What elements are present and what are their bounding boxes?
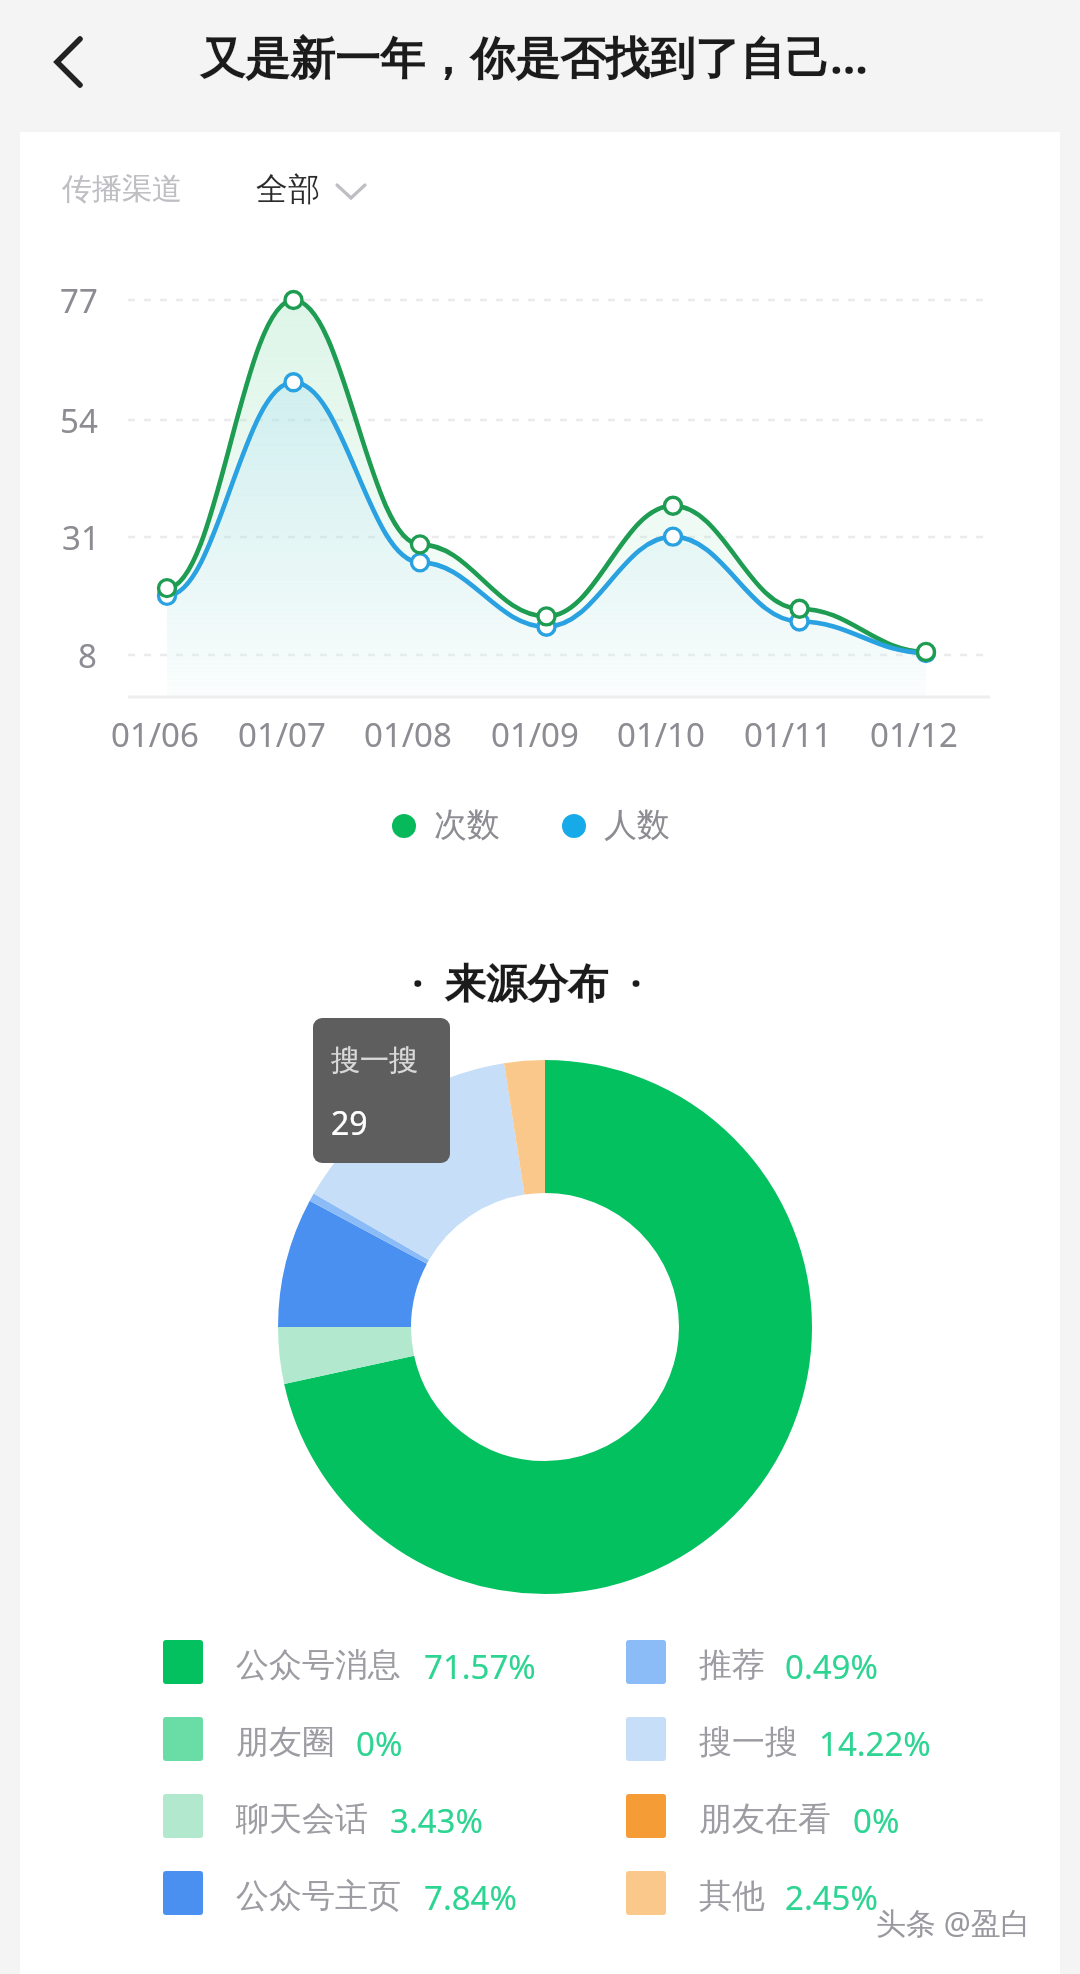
button[interactable]: 聊天会话 <box>163 1793 583 1841</box>
staticText: 77 <box>60 278 98 323</box>
button[interactable]: 朋友在看 <box>626 1793 1046 1841</box>
staticText: 54 <box>60 398 98 443</box>
staticText: 其他 <box>699 1875 765 1917</box>
staticText: 8 <box>78 633 97 678</box>
staticText: 71.57% <box>424 1644 536 1689</box>
button[interactable]: Back <box>24 18 112 106</box>
button[interactable]: 搜一搜 <box>626 1716 1046 1764</box>
staticText: 朋友在看 <box>699 1798 831 1840</box>
staticText: 01/09 <box>491 712 579 757</box>
staticText: 搜一搜 <box>331 1042 418 1079</box>
staticText: 2.45% <box>785 1875 878 1920</box>
button[interactable]: 其他 <box>626 1870 1046 1918</box>
button[interactable]: 次数 <box>392 798 522 854</box>
staticText: 01/11 <box>744 712 832 757</box>
button[interactable]: 朋友圈 <box>163 1716 583 1764</box>
staticText: 01/06 <box>111 712 199 757</box>
staticText: 公众号消息 <box>236 1644 401 1686</box>
staticText: 01/08 <box>364 712 452 757</box>
staticText: 头条 @盈白 <box>876 1902 1031 1943</box>
staticText: 7.84% <box>424 1875 517 1920</box>
staticText: 公众号主页 <box>236 1875 401 1917</box>
staticText: 01/07 <box>238 712 326 757</box>
staticText: 传播渠道 <box>62 170 182 208</box>
staticText: 31 <box>62 515 100 560</box>
button[interactable]: 公众号消息 <box>163 1639 583 1687</box>
staticText: 次数 <box>434 804 500 846</box>
staticText: 全部 <box>256 169 320 209</box>
staticText: 0% <box>853 1798 900 1843</box>
staticText: 29 <box>331 1101 368 1145</box>
button[interactable]: 人数 <box>562 798 692 854</box>
staticText: 0.49% <box>785 1644 878 1689</box>
staticText: 0% <box>356 1721 403 1766</box>
button[interactable]: 公众号主页 <box>163 1870 583 1918</box>
staticText: 14.22% <box>819 1721 931 1766</box>
staticText: 又是新一年，你是否找到了自己... <box>200 26 868 87</box>
staticText: · 来源分布 · <box>412 954 642 1010</box>
staticText: 搜一搜 <box>699 1721 798 1763</box>
staticText: 聊天会话 <box>236 1798 368 1840</box>
staticText: 3.43% <box>390 1798 483 1843</box>
staticText: 人数 <box>604 804 670 846</box>
staticText: 01/12 <box>870 712 958 757</box>
button[interactable]: 全部 <box>248 161 382 219</box>
button[interactable]: 推荐 <box>626 1639 1046 1687</box>
staticText: 推荐 <box>699 1644 765 1686</box>
staticText: 朋友圈 <box>236 1721 335 1763</box>
staticText: 01/10 <box>617 712 705 757</box>
